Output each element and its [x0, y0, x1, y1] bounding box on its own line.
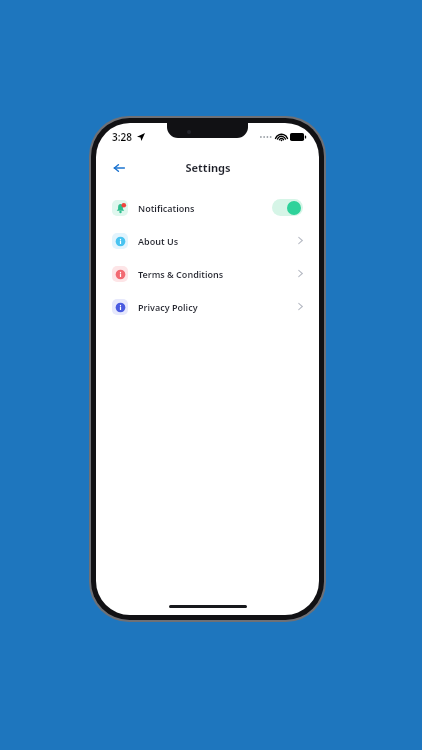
button[interactable]: Terms & Conditions	[96, 257, 319, 290]
button[interactable]: About Us	[96, 224, 319, 257]
staticText: Terms & Conditions	[138, 268, 298, 280]
staticText: Settings	[185, 160, 231, 175]
staticText: About Us	[138, 235, 298, 247]
button[interactable]: Notifications	[96, 191, 319, 224]
staticText: Notifications	[138, 202, 272, 214]
staticText: 3:28	[112, 130, 132, 144]
button[interactable]: Notifications toggle	[272, 199, 303, 216]
staticText: Privacy Policy	[138, 301, 298, 313]
button[interactable]: Privacy Policy	[96, 290, 319, 323]
button[interactable]: Back	[108, 157, 129, 178]
